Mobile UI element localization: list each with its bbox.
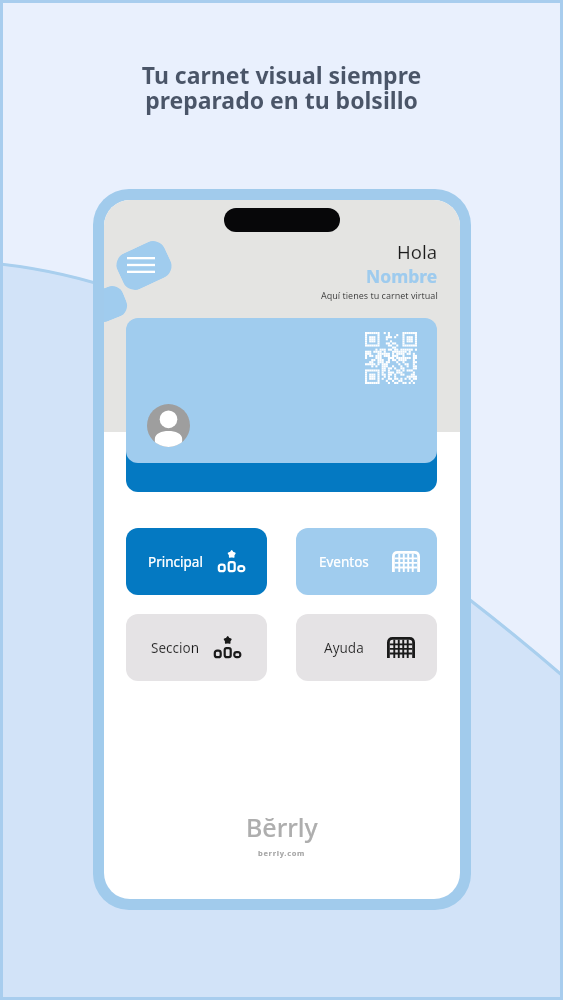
button[interactable]: Eventos xyxy=(296,528,437,595)
staticText: Ayuda xyxy=(324,639,364,657)
staticText: Aquí tienes tu carnet virtual xyxy=(321,289,438,301)
button[interactable]: Ayuda xyxy=(296,614,437,681)
staticText: Nombre xyxy=(366,264,438,288)
staticText: Principal xyxy=(148,553,203,571)
button[interactable]: Principal xyxy=(126,528,267,595)
button[interactable]: Menu xyxy=(114,238,174,292)
staticText: Eventos xyxy=(319,553,369,571)
staticText: Bĕrrly xyxy=(246,810,318,844)
staticText: Hola xyxy=(397,239,438,264)
button[interactable]: Seccion xyxy=(126,614,267,681)
staticText: Seccion xyxy=(151,639,199,657)
staticText: Tu carnet visual siempre preparado en tu… xyxy=(0,59,563,116)
staticText: berrly.com xyxy=(258,848,306,858)
button[interactable]: Carnet virtual xyxy=(126,318,437,463)
